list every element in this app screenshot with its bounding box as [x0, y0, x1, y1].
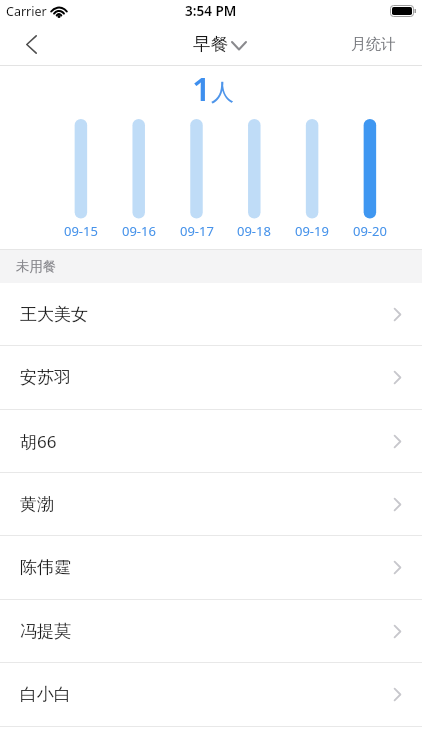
button[interactable]: 早餐	[193, 33, 247, 55]
staticText: 黄渤	[20, 494, 54, 515]
button[interactable]: 胡66	[0, 410, 422, 472]
staticText: Carrier	[6, 3, 47, 20]
staticText: 09-20	[353, 222, 387, 240]
staticText: 09-17	[180, 222, 214, 240]
staticText: 陈伟霆	[20, 557, 71, 578]
button[interactable]: 陈伟霆	[0, 536, 422, 599]
staticText: 月统计	[351, 35, 396, 54]
staticText: 09-19	[295, 222, 329, 240]
staticText: 安苏羽	[20, 367, 71, 388]
button[interactable]: 安苏羽	[0, 346, 422, 409]
staticText: 胡66	[20, 430, 57, 453]
staticText: 1人	[192, 66, 234, 111]
staticText: 09-16	[122, 222, 156, 240]
staticText: 早餐	[193, 33, 228, 55]
staticText: 09-15	[64, 222, 98, 240]
button[interactable]: 冯提莫	[0, 600, 422, 662]
staticText: 未用餐	[16, 258, 57, 275]
staticText: 冯提莫	[20, 621, 71, 642]
button[interactable]: 白小白	[0, 663, 422, 726]
button[interactable]	[0, 22, 62, 66]
staticText: 09-18	[237, 222, 271, 240]
staticText: 王大美女	[20, 304, 88, 325]
button[interactable]: 王大美女	[0, 283, 422, 345]
staticText: 3:54 PM	[185, 2, 237, 20]
button[interactable]: 月统计	[351, 35, 396, 54]
staticText: 白小白	[20, 684, 71, 705]
button[interactable]: 黄渤	[0, 473, 422, 535]
